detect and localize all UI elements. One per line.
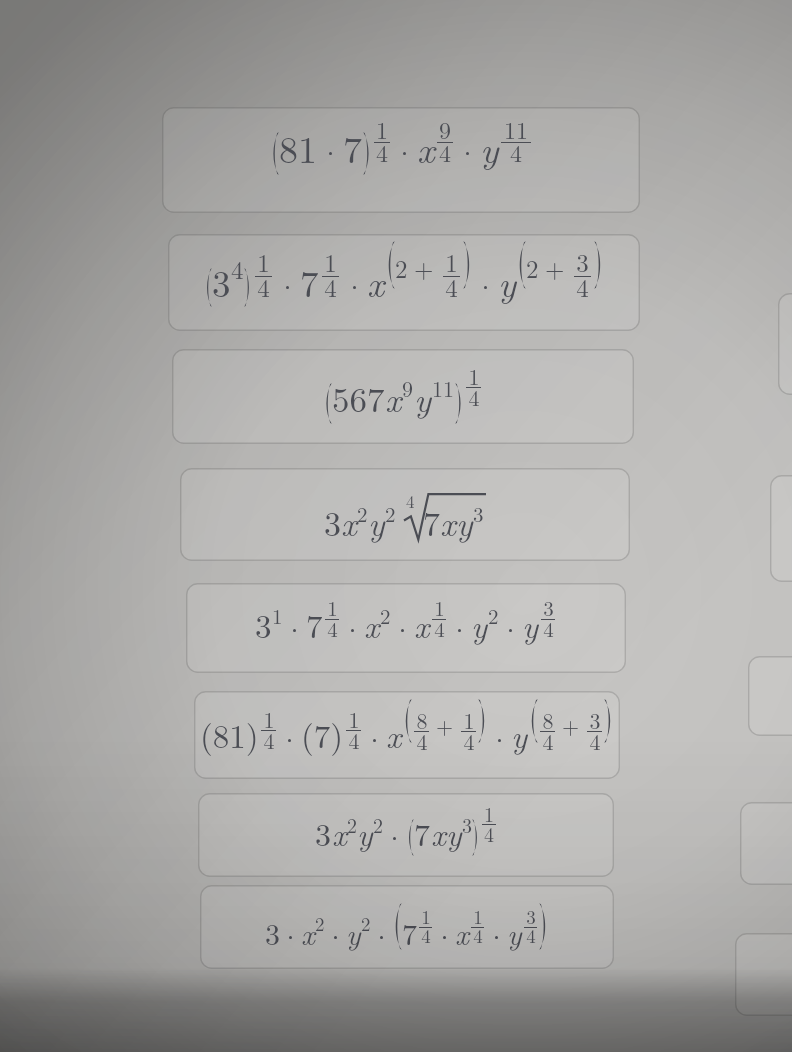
staticText: 3: [576, 244, 589, 279]
staticText: y: [456, 498, 473, 546]
staticText: 4: [468, 381, 480, 412]
button[interactable]: Step 2: [168, 234, 640, 331]
staticText: 4: [463, 725, 475, 756]
staticText: 2: [357, 498, 368, 528]
staticText: 2: [380, 600, 391, 630]
staticText: 1: [434, 592, 445, 622]
staticText: y: [522, 601, 539, 648]
staticText: x: [440, 498, 456, 546]
staticText: 4: [376, 135, 388, 169]
staticText: 2: [361, 910, 371, 937]
staticText: 7: [423, 498, 440, 546]
staticText: 4: [231, 251, 244, 286]
staticText: 4: [263, 724, 275, 755]
staticText: y: [357, 810, 373, 855]
staticText: 1: [473, 903, 483, 930]
staticText: +: [436, 709, 454, 740]
staticText: 3: [589, 704, 601, 735]
staticText: 2: [526, 250, 539, 285]
staticText: 4: [324, 269, 337, 304]
staticText: y: [368, 498, 385, 546]
staticText: 2: [395, 250, 408, 285]
staticText: 1: [445, 244, 458, 279]
staticText: 1: [324, 244, 337, 279]
staticText: 1: [257, 244, 270, 279]
button[interactable]: Step 4: [180, 468, 630, 561]
button[interactable]: Step 13: [735, 933, 792, 1016]
staticText: 9: [439, 112, 451, 146]
staticText: 4: [589, 725, 601, 756]
staticText: 4: [406, 489, 415, 513]
staticText: 4: [473, 922, 483, 949]
staticText: 7: [414, 810, 431, 855]
staticText: 4: [526, 922, 536, 949]
staticText: 4: [327, 613, 338, 643]
staticText: 4: [439, 135, 451, 169]
staticText: 3: [462, 810, 472, 838]
staticText: 11: [432, 372, 455, 403]
staticText: +: [562, 709, 580, 740]
staticText: 4: [510, 135, 522, 169]
staticText: x: [364, 601, 380, 648]
staticText: 2: [373, 810, 383, 838]
staticText: (81): [200, 711, 259, 758]
staticText: 1: [484, 799, 494, 827]
staticText: 7: [402, 911, 417, 954]
staticText: 1: [463, 704, 475, 735]
staticText: x: [332, 810, 347, 855]
staticText: x: [341, 498, 357, 546]
staticText: 3: [265, 911, 280, 954]
button[interactable]: Step 9: [778, 293, 792, 395]
staticText: y: [507, 911, 522, 953]
staticText: y: [446, 810, 462, 855]
staticText: 4: [434, 613, 445, 643]
staticText: y: [511, 711, 528, 758]
button[interactable]: Step 12: [740, 802, 792, 885]
staticText: 7: [306, 601, 323, 648]
button[interactable]: Step 8: [200, 885, 614, 969]
button[interactable]: Step 5: [186, 583, 626, 673]
staticText: y: [414, 373, 432, 423]
staticText: 4: [416, 725, 428, 756]
staticText: x: [385, 373, 402, 423]
staticText: 567: [332, 373, 385, 423]
staticText: 1: [263, 703, 275, 734]
staticText: 81: [279, 120, 318, 174]
staticText: x: [301, 911, 315, 953]
button[interactable]: Step 3: [172, 349, 634, 444]
staticText: 2: [347, 810, 357, 838]
staticText: 8: [542, 704, 554, 735]
staticText: x: [455, 911, 469, 953]
staticText: 1: [348, 703, 360, 734]
staticText: 1: [468, 360, 480, 391]
staticText: y: [471, 601, 488, 648]
staticText: 4: [484, 819, 494, 847]
staticText: 3: [543, 592, 554, 622]
staticText: (7): [301, 711, 344, 758]
button[interactable]: Step 6: [194, 691, 620, 779]
staticText: 3: [212, 255, 231, 307]
staticText: 3: [324, 498, 341, 546]
button[interactable]: Step 7: [198, 793, 614, 877]
button[interactable]: Step 11: [748, 656, 792, 736]
staticText: 1: [327, 592, 338, 622]
button[interactable]: Step 1: [162, 107, 640, 213]
staticText: 3: [526, 903, 536, 930]
button[interactable]: Step 10: [770, 475, 792, 582]
staticText: 4: [576, 269, 589, 304]
staticText: 1: [376, 112, 388, 146]
staticText: 2: [315, 910, 325, 937]
staticText: +: [545, 250, 565, 285]
staticText: x: [414, 601, 430, 648]
staticText: 4: [348, 724, 360, 755]
staticText: y: [480, 120, 499, 174]
staticText: 4: [542, 725, 554, 756]
staticText: 2: [488, 600, 499, 630]
staticText: 4: [543, 613, 554, 643]
staticText: 4: [421, 922, 431, 949]
staticText: 4: [257, 269, 270, 304]
staticText: 3: [473, 498, 484, 528]
staticText: x: [386, 711, 402, 758]
staticText: 7: [300, 255, 319, 307]
staticText: +: [414, 250, 434, 285]
